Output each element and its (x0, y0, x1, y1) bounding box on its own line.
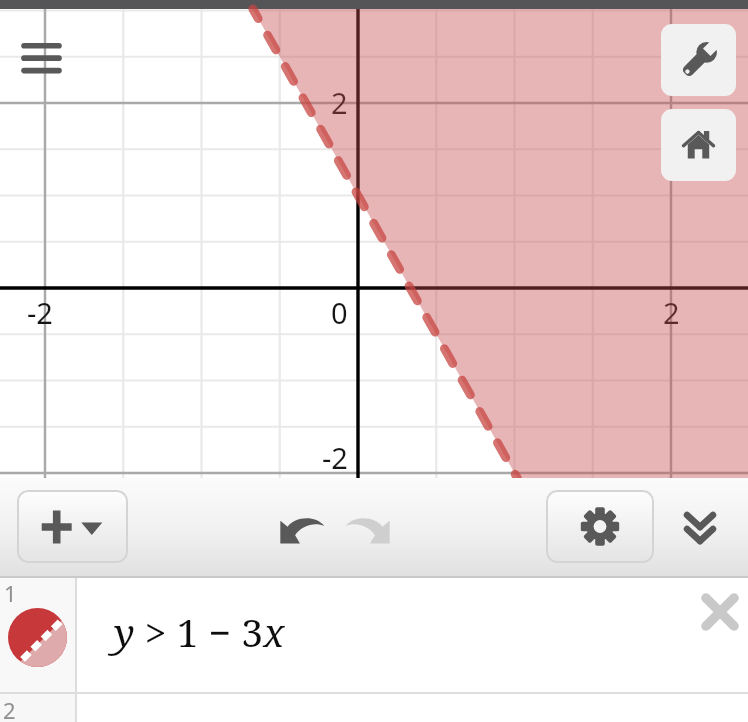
staticText: 1 (4, 578, 17, 608)
button[interactable]: Add expression (17, 490, 128, 563)
staticText: -2 (27, 293, 53, 332)
staticText: y > 1 − 3x (114, 605, 285, 658)
staticText: 2 (331, 83, 348, 122)
staticText: -2 (322, 438, 348, 477)
button[interactable]: Delete expression (692, 584, 748, 640)
staticText: 2 (663, 293, 680, 332)
button[interactable]: Tools (661, 24, 736, 96)
button[interactable]: Redo (341, 510, 393, 551)
button[interactable]: Undo (277, 510, 329, 551)
staticText: 2 (3, 695, 16, 722)
staticText: 0 (331, 293, 348, 332)
button[interactable]: Collapse (676, 496, 724, 556)
button[interactable]: Settings (546, 490, 654, 563)
button[interactable]: 1 (0, 578, 748, 692)
button[interactable]: Home (661, 109, 736, 181)
button[interactable]: Menu (4, 25, 80, 85)
